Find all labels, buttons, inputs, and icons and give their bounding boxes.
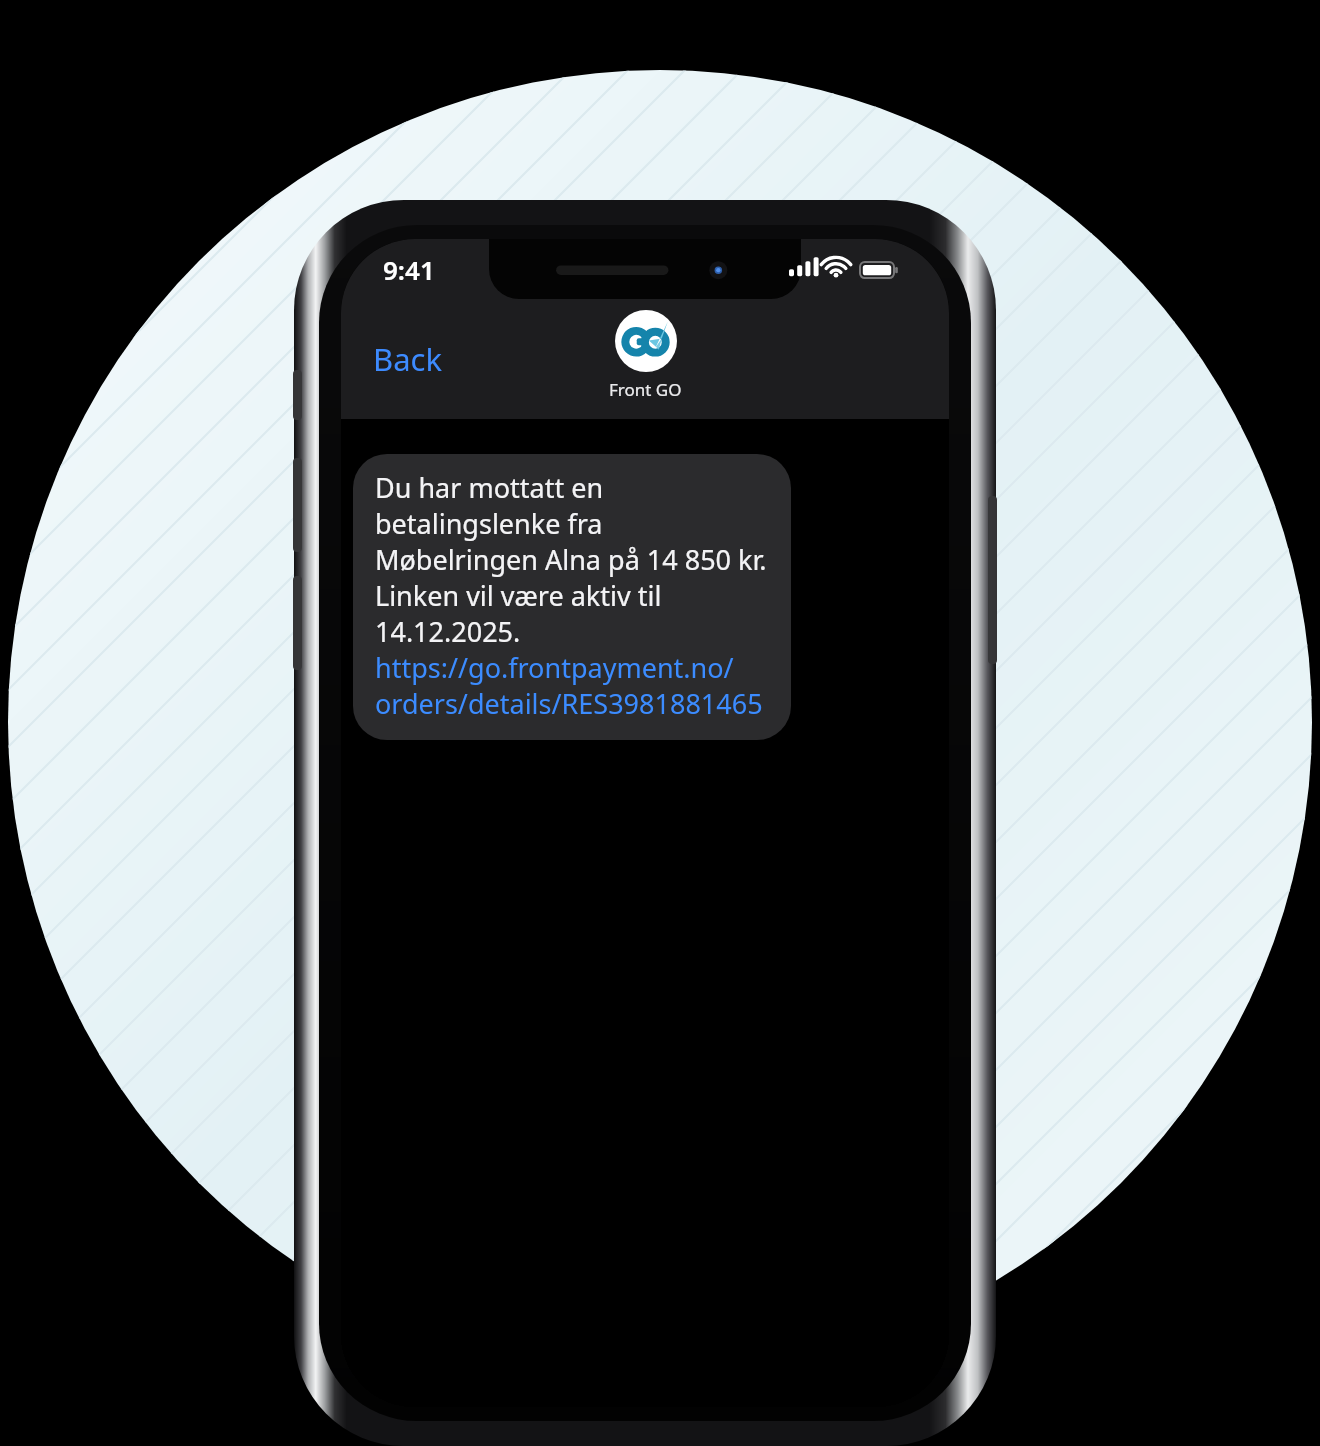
staticText: 9:41 (383, 252, 435, 287)
button[interactable]: Back (365, 330, 450, 388)
other: Front GO (615, 310, 677, 372)
staticText: Front GO (609, 378, 682, 401)
button[interactable]: Du har mottatt en betalingslenke fra Møb… (353, 454, 791, 740)
staticText: Back (373, 338, 442, 380)
staticText: Du har mottatt en betalingslenke fra Møb… (375, 469, 771, 722)
button[interactable]: Front GO (599, 308, 692, 403)
